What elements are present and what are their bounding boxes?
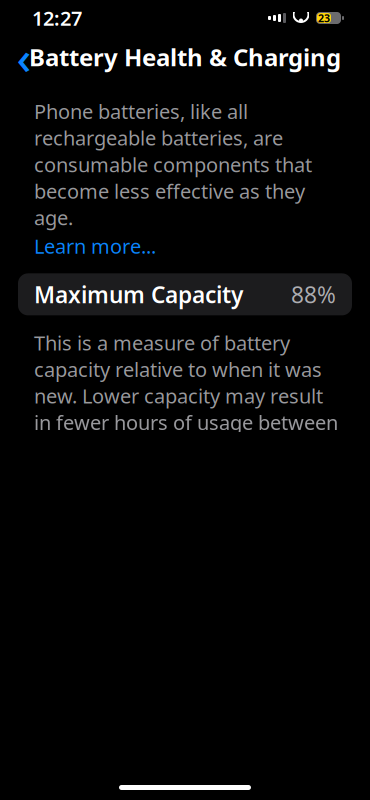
staticText: 88% [291,279,336,309]
staticText: 12:27 [32,5,82,31]
staticText: ‹ [16,27,31,87]
staticText: To reduce battery aging, iPhone learns f… [34,682,327,800]
staticText: Maximum Capacity [34,279,243,309]
button[interactable]: Learn more... [34,233,156,259]
staticText: This is a measure of battery capacity re… [34,329,338,462]
staticText: Battery Health & Charging [29,41,341,73]
button[interactable]: Maximum Capacity [18,273,352,315]
staticText: Learn more... [34,233,156,259]
staticText: 23 [318,11,330,25]
button[interactable]: Back [2,37,46,77]
staticText: Phone batteries, like all rechargeable b… [34,98,312,231]
